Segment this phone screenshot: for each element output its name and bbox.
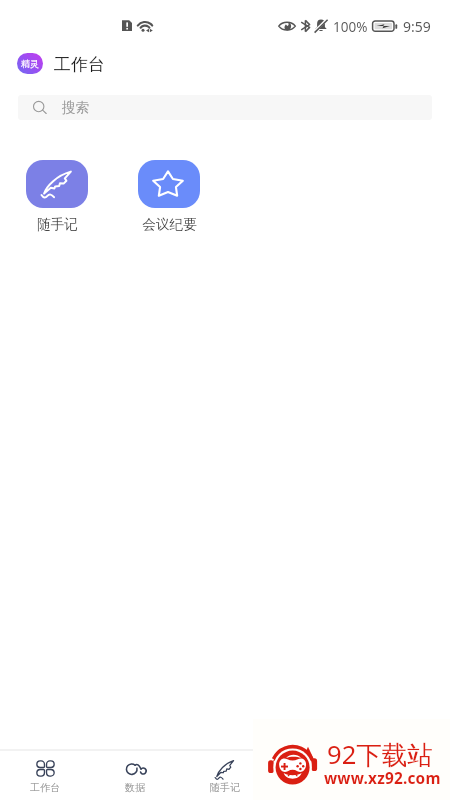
staticText: 100% <box>333 18 368 36</box>
staticText: 设置 <box>395 781 415 794</box>
staticText: www.xz92.com <box>324 768 441 789</box>
staticText: 会议纪要 <box>142 216 197 233</box>
staticText: 工作台 <box>30 781 60 794</box>
button[interactable]: 工作台 <box>0 751 90 800</box>
staticText: 数据 <box>125 781 145 794</box>
staticText: 9:59 <box>403 17 431 36</box>
button[interactable]: 设置 <box>360 751 450 800</box>
staticText: 精灵 <box>21 58 39 69</box>
staticText: 工作台 <box>54 54 105 75</box>
button[interactable]: 我的 <box>270 751 360 800</box>
staticText: 搜索 <box>62 99 89 116</box>
button[interactable]: 搜索 <box>18 95 432 120</box>
staticText: 随手记 <box>37 216 78 233</box>
button[interactable]: 会议纪要 <box>138 160 200 233</box>
button[interactable]: 数据 <box>90 751 180 800</box>
staticText: 随手记 <box>210 781 240 794</box>
staticText: 92下载站 <box>327 737 434 772</box>
button[interactable]: 随手记 <box>180 751 270 800</box>
button[interactable]: 精灵 <box>17 52 105 74</box>
button[interactable]: 随手记 <box>26 160 88 233</box>
